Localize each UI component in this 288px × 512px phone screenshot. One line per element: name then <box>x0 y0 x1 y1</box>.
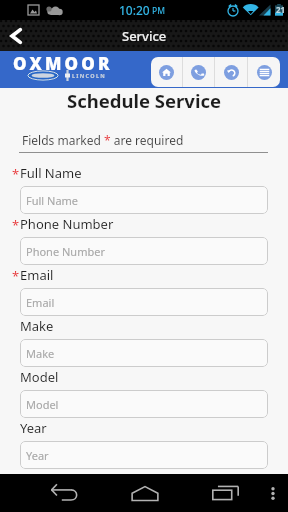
button[interactable]: Home <box>117 474 173 512</box>
staticText: 10:20 <box>119 2 150 18</box>
staticText: LINCOLN <box>72 72 107 79</box>
staticText: Full Name <box>26 193 79 208</box>
staticText: Make <box>26 346 55 361</box>
staticText: 21 <box>276 4 286 15</box>
staticText: * <box>12 216 20 234</box>
staticText: Year <box>26 448 49 463</box>
staticText: Schedule Service <box>0 88 288 113</box>
staticText: * <box>12 267 20 285</box>
button[interactable]: Make <box>20 339 268 367</box>
staticText: Phone Number <box>20 215 114 233</box>
button[interactable]: Full Name <box>20 186 268 214</box>
button[interactable]: More options <box>261 474 285 512</box>
staticText: * <box>12 165 20 183</box>
staticText: OXMOOR <box>13 52 113 75</box>
staticText: Email <box>26 295 55 310</box>
staticText: Fields marked * are required <box>22 132 184 148</box>
staticText: Model <box>26 397 59 412</box>
staticText: Make <box>20 317 54 335</box>
staticText: Phone Number <box>26 244 105 259</box>
button[interactable]: Menu <box>248 57 280 87</box>
button[interactable]: Phone Number <box>20 237 268 265</box>
staticText: Email <box>20 266 54 284</box>
button[interactable]: Oxmoor Ford Lincoln <box>0 51 122 88</box>
button[interactable]: Call <box>183 57 214 87</box>
staticText: Year <box>20 419 47 437</box>
staticText: Full Name <box>20 164 82 182</box>
button[interactable]: Recent apps <box>198 474 252 512</box>
button[interactable]: Home <box>151 57 182 87</box>
button[interactable]: Back <box>215 57 247 87</box>
button[interactable]: Back <box>0 20 31 51</box>
button[interactable]: Year <box>20 441 268 469</box>
button[interactable]: Back <box>37 474 91 512</box>
staticText: Service <box>122 27 167 45</box>
button[interactable]: Model <box>20 390 268 418</box>
button[interactable]: Email <box>20 288 268 316</box>
staticText: PM <box>152 5 165 17</box>
staticText: Model <box>20 368 59 386</box>
